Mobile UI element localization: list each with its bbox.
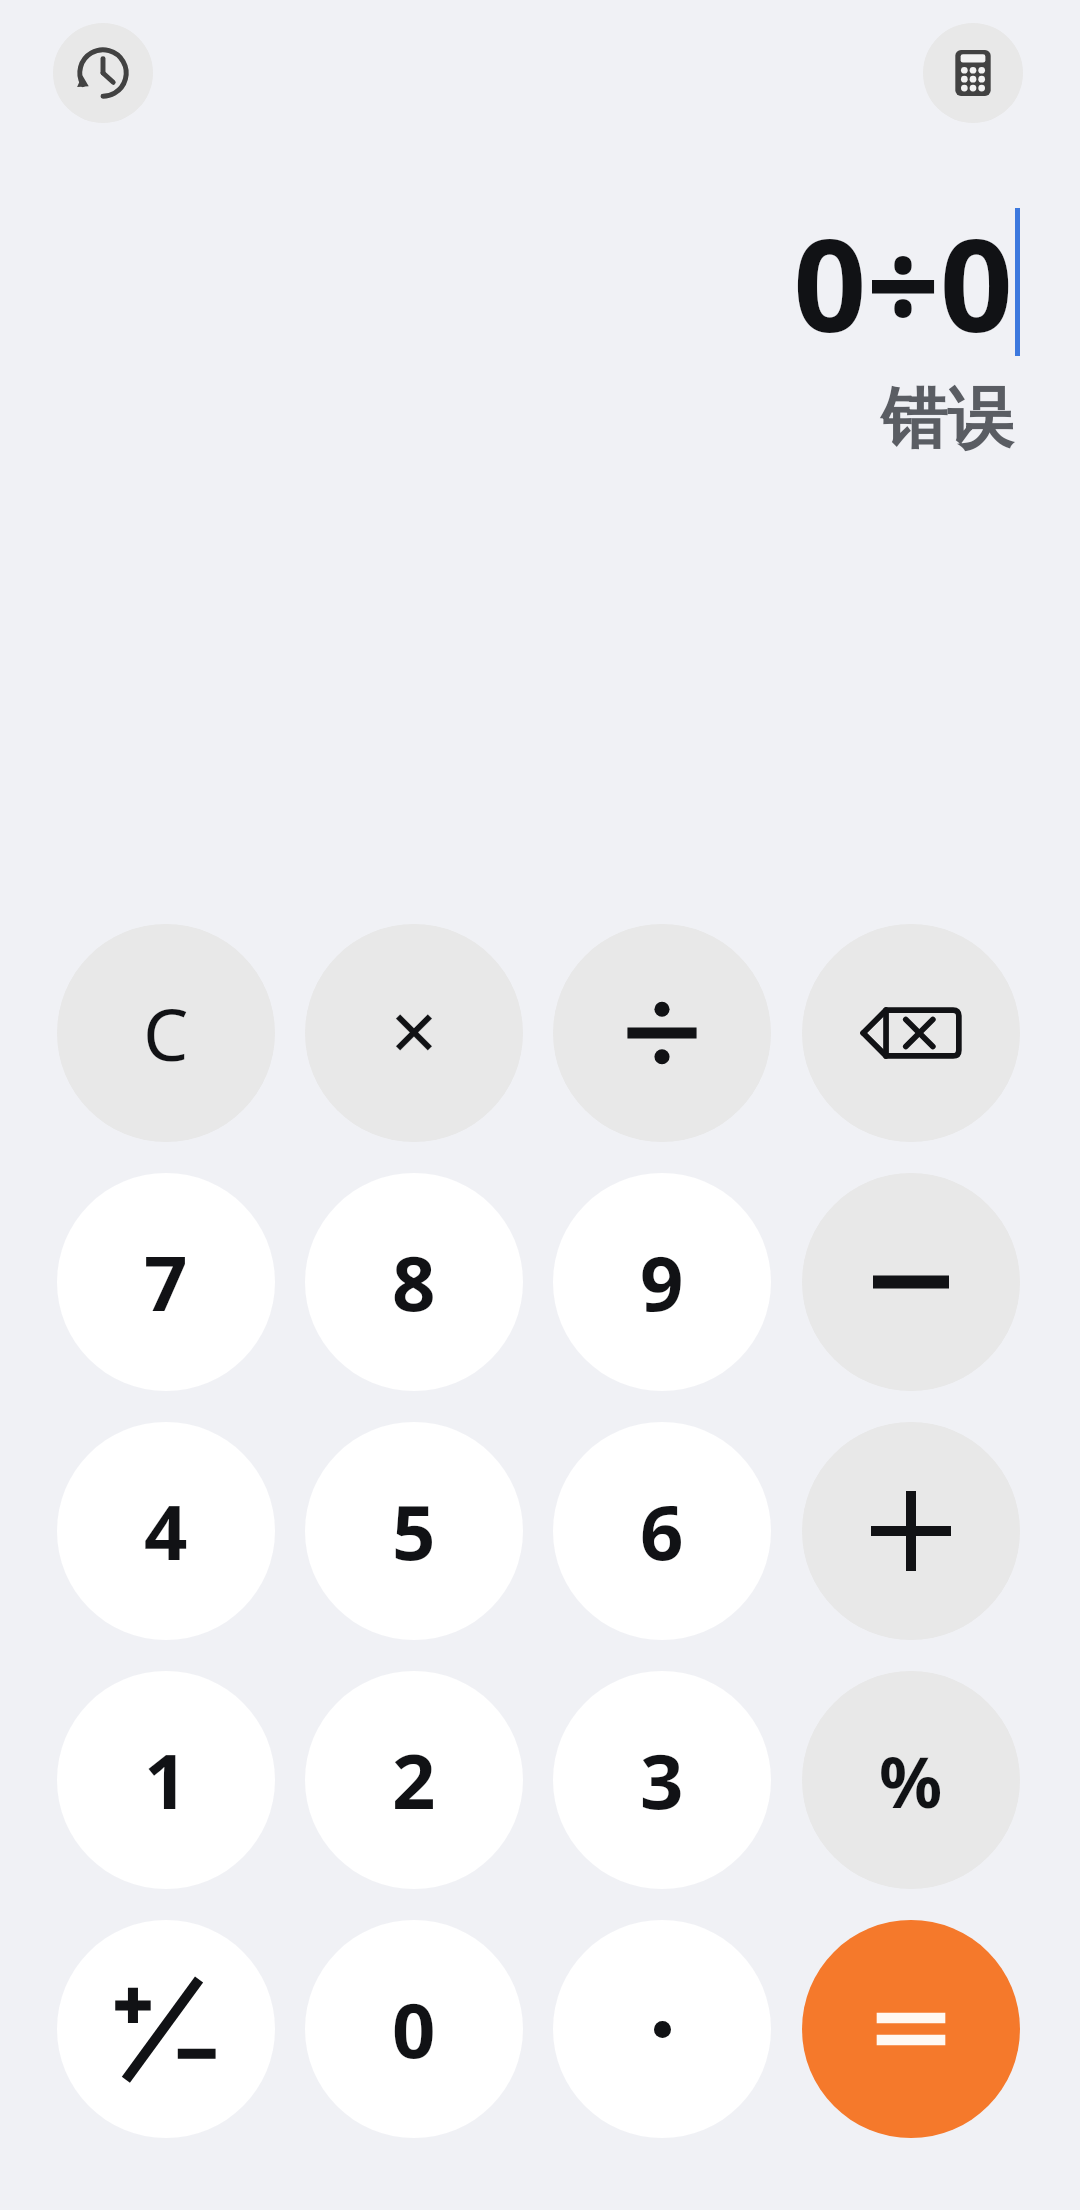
- button[interactable]: Backspace: [802, 924, 1020, 1142]
- button[interactable]: Minus: [802, 1173, 1020, 1391]
- button[interactable]: 3: [553, 1671, 771, 1889]
- staticText: 6: [640, 1479, 684, 1583]
- staticText: 1: [144, 1728, 188, 1832]
- button[interactable]: C: [57, 924, 275, 1142]
- staticText: 0÷0: [793, 195, 1013, 369]
- button[interactable]: Percent: [802, 1671, 1020, 1889]
- button[interactable]: Plus minus: [57, 1920, 275, 2138]
- staticText: ✕: [388, 997, 440, 1069]
- staticText: 4: [144, 1479, 188, 1583]
- button[interactable]: .: [553, 1920, 771, 2138]
- button[interactable]: 4: [57, 1422, 275, 1640]
- button[interactable]: 0: [305, 1920, 523, 2138]
- button[interactable]: Calculator mode: [923, 23, 1023, 123]
- button[interactable]: 2: [305, 1671, 523, 1889]
- staticText: 2: [392, 1728, 436, 1832]
- staticText: C: [143, 984, 189, 1082]
- button[interactable]: 9: [553, 1173, 771, 1391]
- staticText: 8: [392, 1230, 436, 1334]
- staticText: 9: [640, 1230, 684, 1334]
- staticText: 5: [392, 1479, 436, 1583]
- button[interactable]: 7: [57, 1173, 275, 1391]
- button[interactable]: Divide: [553, 924, 771, 1142]
- button[interactable]: Multiply: [305, 924, 523, 1142]
- staticText: 7: [144, 1230, 188, 1334]
- button[interactable]: 8: [305, 1173, 523, 1391]
- staticText: %: [879, 1733, 943, 1828]
- button[interactable]: 1: [57, 1671, 275, 1889]
- button[interactable]: 6: [553, 1422, 771, 1640]
- button[interactable]: History: [53, 23, 153, 123]
- staticText: 3: [640, 1728, 684, 1832]
- button[interactable]: 5: [305, 1422, 523, 1640]
- staticText: 0: [392, 1977, 436, 2081]
- staticText: 错误: [881, 377, 1013, 460]
- button[interactable]: Equals: [802, 1920, 1020, 2138]
- button[interactable]: Plus: [802, 1422, 1020, 1640]
